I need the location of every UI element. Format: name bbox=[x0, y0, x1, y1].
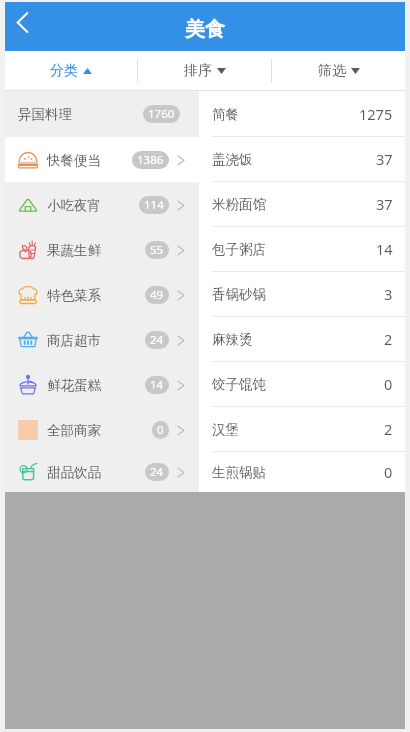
button[interactable]: 排序 bbox=[138, 51, 271, 90]
staticText: 美食 bbox=[185, 17, 225, 42]
staticText: 37 bbox=[376, 194, 393, 214]
staticText: 鲜花蛋糕 bbox=[47, 377, 101, 394]
staticText: 生煎锅贴 bbox=[212, 464, 266, 481]
staticText: 0 bbox=[384, 462, 393, 482]
staticText: 1760 bbox=[148, 106, 175, 122]
staticText: 114 bbox=[144, 197, 164, 213]
staticText: 筛选 bbox=[318, 62, 346, 80]
button[interactable]: 米粉面馆 bbox=[199, 182, 405, 226]
staticText: 37 bbox=[376, 149, 393, 169]
staticText: 饺子馄饨 bbox=[212, 376, 266, 393]
staticText: 排序 bbox=[184, 62, 212, 80]
staticText: 1275 bbox=[359, 104, 393, 124]
staticText: 香锅砂锅 bbox=[212, 286, 266, 303]
button[interactable]: 筛选 bbox=[272, 51, 405, 90]
button[interactable]: 特色菜系 bbox=[5, 272, 199, 317]
staticText: 24 bbox=[150, 332, 164, 348]
button[interactable]: 鲜花蛋糕 bbox=[5, 362, 199, 407]
button[interactable]: 包子粥店 bbox=[199, 227, 405, 271]
button[interactable]: 简餐 bbox=[199, 91, 405, 136]
staticText: 分类 bbox=[50, 62, 78, 80]
staticText: 14 bbox=[150, 377, 164, 393]
staticText: 3 bbox=[384, 284, 393, 304]
staticText: 2 bbox=[384, 329, 393, 349]
staticText: 盖浇饭 bbox=[212, 151, 253, 168]
staticText: 果蔬生鲜 bbox=[47, 242, 101, 259]
staticText: 14 bbox=[376, 239, 393, 259]
button[interactable]: 汉堡 bbox=[199, 407, 405, 451]
staticText: 49 bbox=[150, 287, 164, 303]
staticText: 商店超市 bbox=[47, 332, 101, 349]
button[interactable]: 盖浇饭 bbox=[199, 137, 405, 181]
staticText: 甜品饮品 bbox=[47, 464, 101, 481]
staticText: 全部商家 bbox=[47, 422, 101, 439]
staticText: 米粉面馆 bbox=[212, 196, 266, 213]
staticText: 包子粥店 bbox=[212, 241, 266, 258]
staticText: 快餐便当 bbox=[47, 152, 101, 169]
staticText: 0 bbox=[157, 422, 164, 438]
staticText: 小吃夜宵 bbox=[47, 197, 101, 214]
staticText: 55 bbox=[150, 242, 164, 258]
staticText: 麻辣烫 bbox=[212, 331, 253, 348]
button[interactable]: 异国料理 bbox=[5, 91, 199, 137]
button[interactable]: 甜品饮品 bbox=[5, 452, 199, 492]
button[interactable]: 果蔬生鲜 bbox=[5, 227, 199, 272]
staticText: 汉堡 bbox=[212, 421, 239, 438]
staticText: 0 bbox=[384, 374, 393, 394]
button[interactable]: 快餐便当 bbox=[5, 137, 199, 182]
button[interactable]: 全部商家 bbox=[5, 407, 199, 452]
staticText: 1386 bbox=[137, 152, 164, 168]
staticText: 异国料理 bbox=[18, 106, 72, 123]
staticText: 简餐 bbox=[212, 106, 239, 123]
button[interactable]: 香锅砂锅 bbox=[199, 272, 405, 316]
button[interactable]: 小吃夜宵 bbox=[5, 182, 199, 227]
button[interactable]: 麻辣烫 bbox=[199, 317, 405, 361]
button[interactable]: 饺子馄饨 bbox=[199, 362, 405, 406]
button[interactable]: 商店超市 bbox=[5, 317, 199, 362]
staticText: 特色菜系 bbox=[47, 287, 101, 304]
button[interactable]: Back bbox=[5, 2, 49, 51]
staticText: 24 bbox=[150, 464, 164, 480]
button[interactable]: 生煎锅贴 bbox=[199, 452, 405, 492]
button[interactable]: 分类 bbox=[5, 51, 137, 90]
staticText: 2 bbox=[384, 419, 393, 439]
